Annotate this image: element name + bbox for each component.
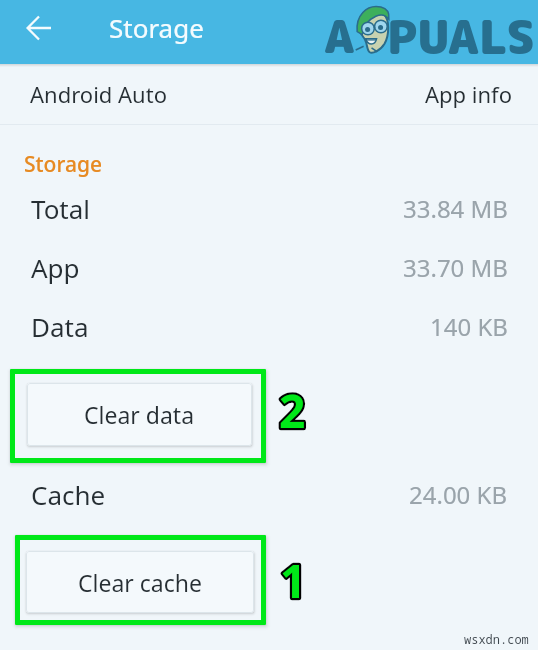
button[interactable]: App	[0, 247, 538, 287]
staticText: 2	[279, 379, 306, 442]
button[interactable]: Clear data	[27, 383, 252, 446]
staticText: Storage	[24, 150, 102, 179]
staticText: Total	[31, 191, 91, 226]
staticText: 140 KB	[430, 310, 508, 343]
staticText: Clear data	[84, 399, 195, 430]
staticText: 33.70 MB	[403, 251, 508, 284]
staticText: 33.84 MB	[403, 192, 508, 225]
button[interactable]: Android Auto	[0, 64, 538, 124]
button[interactable]: Total	[0, 188, 538, 228]
staticText: Cache	[31, 477, 106, 512]
button[interactable]: Back	[0, 0, 76, 64]
button[interactable]: Cache	[0, 474, 538, 514]
staticText: 1	[280, 549, 307, 612]
button[interactable]: Data	[0, 306, 538, 346]
staticText: 24.00 KB	[409, 478, 508, 511]
staticText: A	[324, 5, 355, 68]
staticText: Storage	[109, 10, 204, 45]
staticText: 1	[280, 549, 307, 612]
staticText: wsxdn.com	[464, 631, 529, 647]
staticText: 2	[279, 379, 306, 442]
staticText: Android Auto	[30, 79, 167, 109]
button[interactable]: Clear cache	[26, 551, 254, 613]
staticText: Clear cache	[78, 567, 202, 598]
staticText: PUALS	[387, 5, 535, 69]
staticText: App info	[425, 79, 512, 109]
staticText: Data	[31, 309, 89, 344]
staticText: App	[31, 250, 80, 285]
